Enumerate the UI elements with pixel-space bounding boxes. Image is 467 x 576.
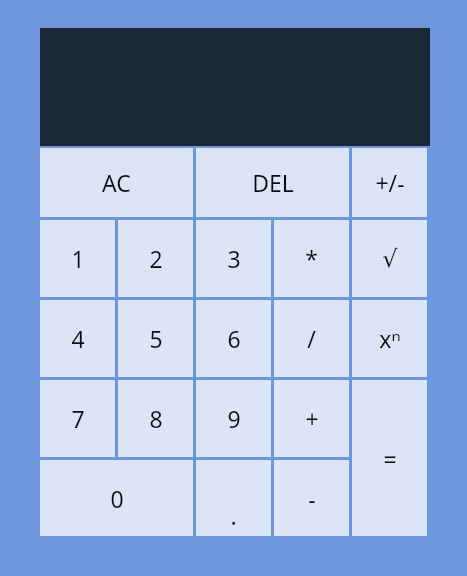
button[interactable]: 1 [40, 220, 115, 297]
staticText: + [305, 403, 319, 434]
staticText: 0 [110, 483, 124, 514]
staticText: = [383, 443, 397, 474]
button[interactable]: - [274, 460, 349, 536]
button[interactable]: 6 [196, 300, 271, 377]
button[interactable]: Square root [352, 220, 427, 297]
button[interactable]: 7 [40, 380, 115, 457]
staticText: - [308, 483, 316, 514]
staticText: √ [382, 245, 398, 273]
staticText: +/- [375, 167, 405, 198]
staticText: 6 [227, 323, 241, 354]
button[interactable]: 2 [118, 220, 193, 297]
staticText: * [305, 243, 318, 274]
staticText: AC [102, 167, 131, 198]
staticText: / [307, 323, 316, 354]
staticText: DEL [252, 167, 294, 198]
button[interactable]: + [274, 380, 349, 457]
button[interactable]: +/- [352, 148, 427, 217]
staticText: 2 [149, 243, 163, 274]
staticText: . [230, 500, 237, 531]
button[interactable]: 9 [196, 380, 271, 457]
button[interactable]: * [274, 220, 349, 297]
staticText: 7 [71, 403, 85, 434]
staticText: 4 [71, 323, 85, 354]
button[interactable]: 8 [118, 380, 193, 457]
button[interactable]: Power [352, 300, 427, 377]
button[interactable]: / [274, 300, 349, 377]
button[interactable]: 3 [196, 220, 271, 297]
staticText: 1 [71, 243, 85, 274]
button[interactable]: . [196, 460, 271, 536]
staticText: 8 [149, 403, 163, 434]
staticText: 5 [149, 323, 163, 354]
staticText: 3 [227, 243, 241, 274]
button[interactable]: DEL [196, 148, 349, 217]
staticText: 9 [227, 403, 241, 434]
button[interactable]: AC [40, 148, 193, 217]
button[interactable]: = [352, 380, 427, 536]
button[interactable]: 5 [118, 300, 193, 377]
staticText: xⁿ [379, 323, 401, 354]
button[interactable]: 4 [40, 300, 115, 377]
button[interactable]: 0 [40, 460, 193, 536]
